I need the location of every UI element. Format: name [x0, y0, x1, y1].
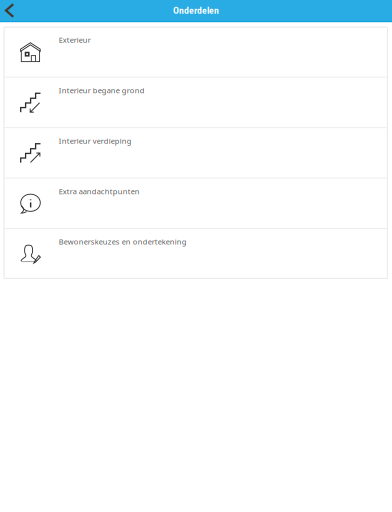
staticText: Extra aandachtpunten — [59, 186, 140, 196]
button[interactable]: Interieur verdieping — [4, 128, 387, 179]
staticText: Onderdelen — [173, 5, 219, 16]
staticText: Exterieur — [59, 35, 91, 45]
staticText: Interieur begane grond — [59, 85, 145, 95]
button[interactable]: Back — [0, 0, 19, 21]
button[interactable]: Bewonerskeuzes en ondertekening — [4, 229, 387, 278]
staticText: Interieur verdieping — [59, 136, 132, 146]
staticText: Bewonerskeuzes en ondertekening — [59, 237, 187, 247]
button[interactable]: Interieur begane grond — [4, 78, 387, 128]
button[interactable]: Exterieur — [4, 27, 387, 78]
button[interactable]: Extra aandachtpunten — [4, 179, 387, 229]
